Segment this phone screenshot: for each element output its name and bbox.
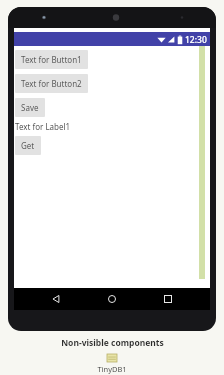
staticText: Get bbox=[21, 140, 35, 151]
staticText: Text for Button2 bbox=[21, 78, 82, 89]
button[interactable]: Get bbox=[15, 136, 41, 155]
button[interactable]: Text for Button1 bbox=[15, 50, 88, 69]
staticText: Non-visible components bbox=[61, 337, 164, 349]
staticText: Text for Button1 bbox=[21, 54, 82, 65]
staticText: Text for Label1 bbox=[15, 121, 71, 132]
button[interactable]: Save bbox=[15, 98, 45, 117]
button[interactable]: Text for Button2 bbox=[15, 74, 88, 93]
button[interactable]: Recent apps bbox=[158, 289, 178, 309]
staticText: Save bbox=[21, 102, 39, 113]
button[interactable]: Home bbox=[102, 289, 122, 309]
staticText: TinyDB1 bbox=[97, 364, 127, 374]
button[interactable]: Back bbox=[46, 289, 66, 309]
staticText: 12:30 bbox=[185, 34, 207, 45]
